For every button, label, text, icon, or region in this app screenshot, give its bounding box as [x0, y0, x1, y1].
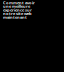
- staticText: Comment avoir une meilleure experience s…: [3, 0, 35, 20]
